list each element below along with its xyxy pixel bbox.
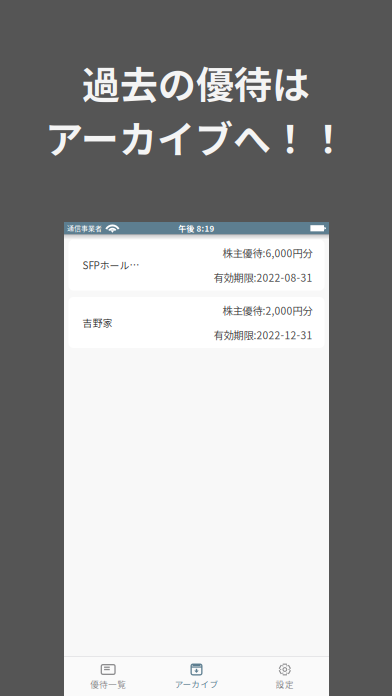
staticText: SFPホール…	[82, 258, 139, 272]
staticText: アーカイブへ！！	[45, 109, 347, 164]
button[interactable]: SFPホール…	[68, 239, 324, 290]
staticText: アーカイブ	[174, 678, 218, 690]
button[interactable]: 吉野家	[68, 297, 324, 348]
button[interactable]: 優待一覧	[64, 657, 152, 696]
button[interactable]: 設定	[241, 657, 329, 696]
staticText: 通信事業者	[67, 223, 102, 233]
staticText: 過去の優待は	[82, 55, 310, 110]
staticText: 株主優待:2,000円分	[222, 303, 312, 318]
staticText: 優待一覧	[90, 678, 126, 690]
staticText: 株主優待:6,000円分	[222, 245, 312, 260]
button[interactable]: アーカイブ	[152, 657, 241, 696]
staticText: 有効期限:2022-12-31	[213, 327, 312, 342]
staticText: 有効期限:2022-08-31	[213, 270, 312, 285]
staticText: 設定	[276, 678, 294, 690]
staticText: 吉野家	[82, 315, 112, 330]
staticText: 午後 8:19	[178, 222, 214, 234]
